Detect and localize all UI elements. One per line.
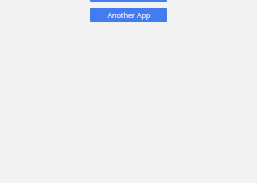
button[interactable]: First App: [90, 0, 167, 2]
button[interactable]: Another App: [90, 8, 167, 22]
staticText: Another App: [107, 10, 151, 20]
